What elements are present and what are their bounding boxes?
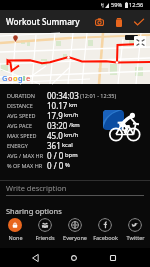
staticText: G <box>2 73 8 83</box>
button[interactable]: Camera <box>89 12 109 32</box>
button[interactable]: Home <box>64 248 84 267</box>
staticText: Write description <box>6 183 67 193</box>
staticText: g <box>18 73 23 83</box>
staticText: (12:01 - 12:35) <box>80 92 117 99</box>
staticText: Twitter <box>126 234 145 241</box>
button[interactable]: Fullscreen <box>134 36 146 48</box>
staticText: 00:34:03 <box>47 90 79 100</box>
staticText: kcal <box>62 141 73 149</box>
staticText: Workout Summary <box>6 16 80 27</box>
button[interactable]: Save <box>129 12 149 32</box>
staticText: 45.0 <box>47 130 63 140</box>
button[interactable]: Back <box>25 248 45 267</box>
staticText: MAX SPEED <box>7 132 37 139</box>
staticText: AVG / MAX HR <box>7 152 44 159</box>
staticText: Sharing options <box>6 206 62 216</box>
button[interactable]: Everyone <box>60 218 90 241</box>
button[interactable]: None <box>0 218 30 241</box>
staticText: None <box>8 234 23 241</box>
staticText: bpm <box>65 151 78 159</box>
button[interactable]: Delete <box>109 12 129 32</box>
button[interactable]: Recents <box>103 248 123 267</box>
staticText: 12:56 <box>129 1 144 9</box>
staticText: Everyone <box>63 234 87 241</box>
staticText: 10.17 <box>47 100 68 110</box>
staticText: o <box>13 73 18 83</box>
staticText: AVG PACE <box>7 122 32 129</box>
staticText: 361 <box>47 140 61 150</box>
staticText: /km <box>69 121 80 129</box>
staticText: Friends <box>35 234 55 241</box>
staticText: AVG SPEED <box>7 112 36 119</box>
staticText: km/h <box>64 111 79 119</box>
staticText: 03:20 <box>47 120 68 130</box>
button[interactable]: Facebook <box>90 218 120 241</box>
staticText: km <box>69 101 78 109</box>
staticText: 0 / 0 <box>47 160 64 170</box>
staticText: 0 / 0 <box>47 150 64 160</box>
staticText: e <box>26 73 31 83</box>
staticText: l <box>23 73 26 83</box>
staticText: Facebook <box>93 234 118 241</box>
button[interactable]: Friends <box>30 218 60 241</box>
staticText: % OF MAX HR <box>7 162 43 169</box>
staticText: 59% <box>111 1 123 9</box>
button[interactable]: Twitter <box>120 218 150 241</box>
staticText: DURATION <box>7 92 35 99</box>
staticText: 17.9 <box>47 110 63 120</box>
staticText: o <box>8 73 13 83</box>
staticText: km/h <box>64 131 79 139</box>
staticText: % <box>65 161 70 169</box>
staticText: DISTANCE <box>7 102 33 109</box>
staticText: ENERGY <box>7 142 28 149</box>
